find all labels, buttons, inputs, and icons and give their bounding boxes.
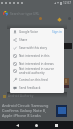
button[interactable]: Back [14,122,21,129]
staticText: android authority [19,71,45,75]
staticText: Android Circuit: Samsung [2,103,49,108]
button[interactable]: Not interested in dnews [10,60,64,68]
staticText: Sign in [52,30,62,34]
staticText: Not interested in this [19,54,50,58]
button[interactable]: Control on this feed [10,76,64,84]
button[interactable]: Google Voice [10,28,64,36]
button[interactable]: Save with this story [10,44,64,52]
button[interactable]: Share [10,36,64,44]
button[interactable]: Recent apps [53,122,60,129]
staticText: Send feedback [19,86,41,90]
staticText: Save with this story [19,46,48,50]
staticText: Confirms Galaxy Note 8, [2,108,47,113]
button[interactable]: Not interested in this [10,52,64,60]
staticText: Not interested in dnews [19,62,54,66]
staticText: Google Voice [19,30,38,34]
staticText: Apple iPhone 8 Leaks [2,113,41,118]
staticText: 12:57 [63,1,72,5]
staticText: Android Authority [8,94,34,98]
staticText: Control on this feed [19,78,48,82]
button[interactable]: Send feedback [10,84,64,92]
staticText: Not interested in source [19,67,54,71]
button[interactable]: Not interested in source [10,67,64,75]
staticText: Share [19,38,28,42]
staticText: Search or type URL [10,11,40,15]
button[interactable]: Home [33,122,40,129]
